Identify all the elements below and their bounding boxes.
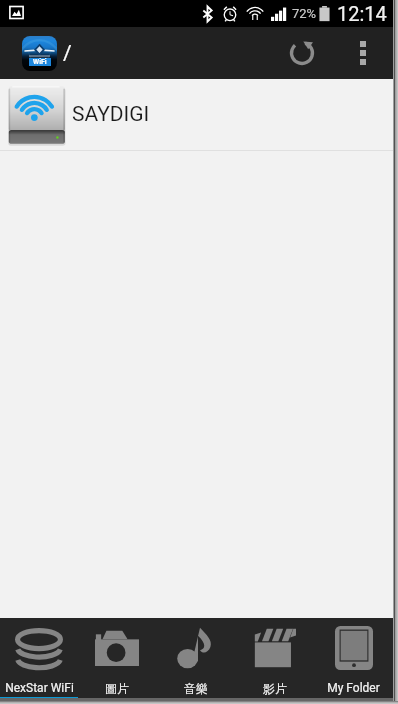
staticText: / [63,41,72,66]
button[interactable]: NexStar WiFi [0,618,78,701]
staticText: NexStar WiFi [5,681,74,695]
staticText: 音樂 [184,681,208,696]
staticText: 72% [292,6,317,21]
button[interactable]: 圖片 [78,618,156,701]
button[interactable]: 音樂 [156,618,235,701]
staticText: WiFi [33,58,47,66]
staticText: My Folder [327,681,380,695]
staticText: SAYDIGI [72,102,150,127]
button[interactable]: NexStar WiFi [22,36,57,71]
button[interactable]: More options [341,27,385,79]
button[interactable]: 影片 [235,618,314,701]
button[interactable]: SAYDIGI [0,79,393,151]
button[interactable]: My Folder [314,618,393,701]
button[interactable]: Refresh [276,27,328,79]
staticText: 影片 [263,681,287,696]
staticText: 圖片 [105,681,129,696]
staticText: 12:14 [337,2,387,25]
